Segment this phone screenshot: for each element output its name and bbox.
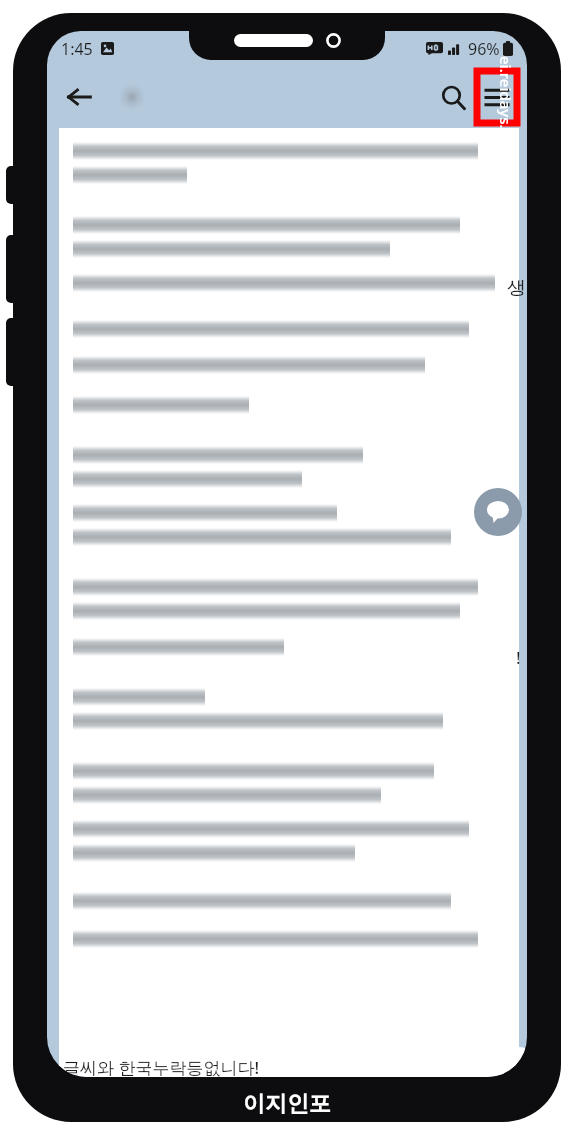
staticText: 생 (507, 276, 526, 300)
staticText: 1:45 (61, 38, 93, 60)
staticText: 글씨와 한국누락등없니다! (63, 1056, 260, 1077)
staticText: ei.reidays.com (496, 56, 516, 160)
button[interactable] (109, 84, 155, 110)
staticText: 96% (468, 38, 500, 60)
button[interactable]: Search (431, 75, 475, 119)
staticText: ! (516, 646, 521, 669)
button[interactable]: Menu (477, 71, 517, 123)
staticText: 이지인포 (243, 1090, 331, 1118)
button[interactable]: Chat (474, 488, 522, 536)
button[interactable]: Back (57, 75, 101, 119)
